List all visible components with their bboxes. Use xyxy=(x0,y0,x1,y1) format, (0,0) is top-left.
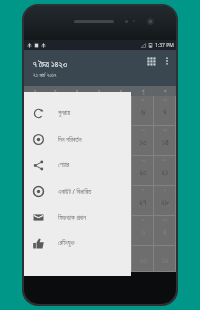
staticText: শ xyxy=(164,89,167,94)
staticText: ১০ xyxy=(74,139,81,147)
button[interactable]: দিন পরিবর্তন xyxy=(24,126,131,152)
staticText: ম xyxy=(76,89,79,94)
button[interactable]: পুনরায় xyxy=(24,100,131,126)
button[interactable]: ২৪ xyxy=(66,186,88,216)
button[interactable]: ৭ xyxy=(66,246,88,272)
button[interactable]: ১৭ xyxy=(66,156,88,186)
staticText: রেটিংযুক্ত xyxy=(58,240,75,246)
button[interactable]: ২৯ xyxy=(24,216,45,246)
staticText: ১১ xyxy=(162,257,169,265)
button[interactable]: ৩ xyxy=(66,96,88,126)
button[interactable]: ১০ xyxy=(66,126,88,156)
button[interactable]: ৮ xyxy=(24,126,45,156)
staticText: ১৩ xyxy=(139,139,147,147)
button[interactable]: ২২ xyxy=(24,186,45,216)
staticText: ১৩ xyxy=(163,218,167,222)
button[interactable]: More options xyxy=(160,54,174,68)
staticText: 1:37 PM xyxy=(155,42,174,49)
staticText: ২১ মার্চ ২০১৭ xyxy=(33,71,57,78)
staticText: পুনরায় xyxy=(58,110,71,116)
button[interactable]: ১৫ xyxy=(132,96,154,126)
staticText: ফিডব্যাক প্রদান xyxy=(58,213,87,221)
button[interactable]: রেটিংযুক্ত xyxy=(24,230,131,256)
button[interactable]: ২ xyxy=(110,216,132,246)
button[interactable]: Grid view xyxy=(142,52,160,70)
staticText: দিন পরিবর্তন xyxy=(58,135,82,143)
staticText: ১৬ xyxy=(163,98,167,102)
button[interactable]: ১৯ xyxy=(110,156,132,186)
staticText: ৭ চৈত্র ১৪২৩ xyxy=(33,58,68,70)
button[interactable]: ৫ xyxy=(132,186,154,216)
staticText: ৬ xyxy=(141,109,146,117)
button[interactable]: ২৬ xyxy=(110,186,132,216)
button[interactable]: ৯ xyxy=(110,246,132,272)
button[interactable]: ৫ xyxy=(24,246,45,272)
button[interactable]: ১৫ xyxy=(24,156,45,186)
button[interactable]: ২৩ xyxy=(45,186,66,216)
button[interactable]: এবাউট / বিস্তারিত xyxy=(24,178,131,204)
staticText: ২৩ xyxy=(163,128,168,132)
staticText: ২০ xyxy=(139,169,147,177)
staticText: ৭ xyxy=(163,109,167,117)
staticText: ৩০ xyxy=(163,158,167,162)
button[interactable]: ৯ xyxy=(45,126,66,156)
button[interactable]: ২ xyxy=(45,96,66,126)
staticText: এবাউট / বিস্তারিত xyxy=(58,187,92,195)
button[interactable]: ১১ xyxy=(154,246,176,272)
staticText: ১৫ xyxy=(141,98,145,102)
button[interactable]: ২৩ xyxy=(154,126,176,156)
button[interactable]: ৩১ xyxy=(66,216,88,246)
staticText: ৩ xyxy=(141,229,146,237)
button[interactable]: ৩০ xyxy=(154,156,176,186)
staticText: ২৮ xyxy=(161,199,170,207)
button[interactable]: ১০ xyxy=(132,246,154,272)
staticText: ২৯ xyxy=(141,158,145,162)
staticText: ৫ xyxy=(142,188,144,192)
button[interactable]: ফিডব্যাক প্রদান xyxy=(24,204,131,230)
button[interactable]: ২২ xyxy=(132,126,154,156)
staticText: ১০ xyxy=(140,257,147,265)
staticText: ১ xyxy=(33,109,37,117)
button[interactable]: ১ xyxy=(24,96,45,126)
button[interactable]: ২৫ xyxy=(88,186,110,216)
staticText: ৮ xyxy=(32,139,37,147)
button[interactable]: ১৬ xyxy=(154,96,176,126)
staticText: ব xyxy=(120,89,122,94)
button[interactable]: ৫ xyxy=(110,96,132,126)
button[interactable]: ৬ xyxy=(154,186,176,216)
staticText: ৬ xyxy=(164,188,167,192)
staticText: ১২ xyxy=(141,218,145,222)
button[interactable]: ১৬ xyxy=(45,156,66,186)
button[interactable]: ১৩ xyxy=(154,216,176,246)
button[interactable]: ১২ xyxy=(110,126,132,156)
button[interactable]: ১২ xyxy=(132,216,154,246)
button[interactable]: ৩০ xyxy=(45,216,66,246)
staticText: ৪ xyxy=(163,229,167,237)
button[interactable]: ২৯ xyxy=(132,156,154,186)
button[interactable]: শেয়ার xyxy=(24,152,131,178)
